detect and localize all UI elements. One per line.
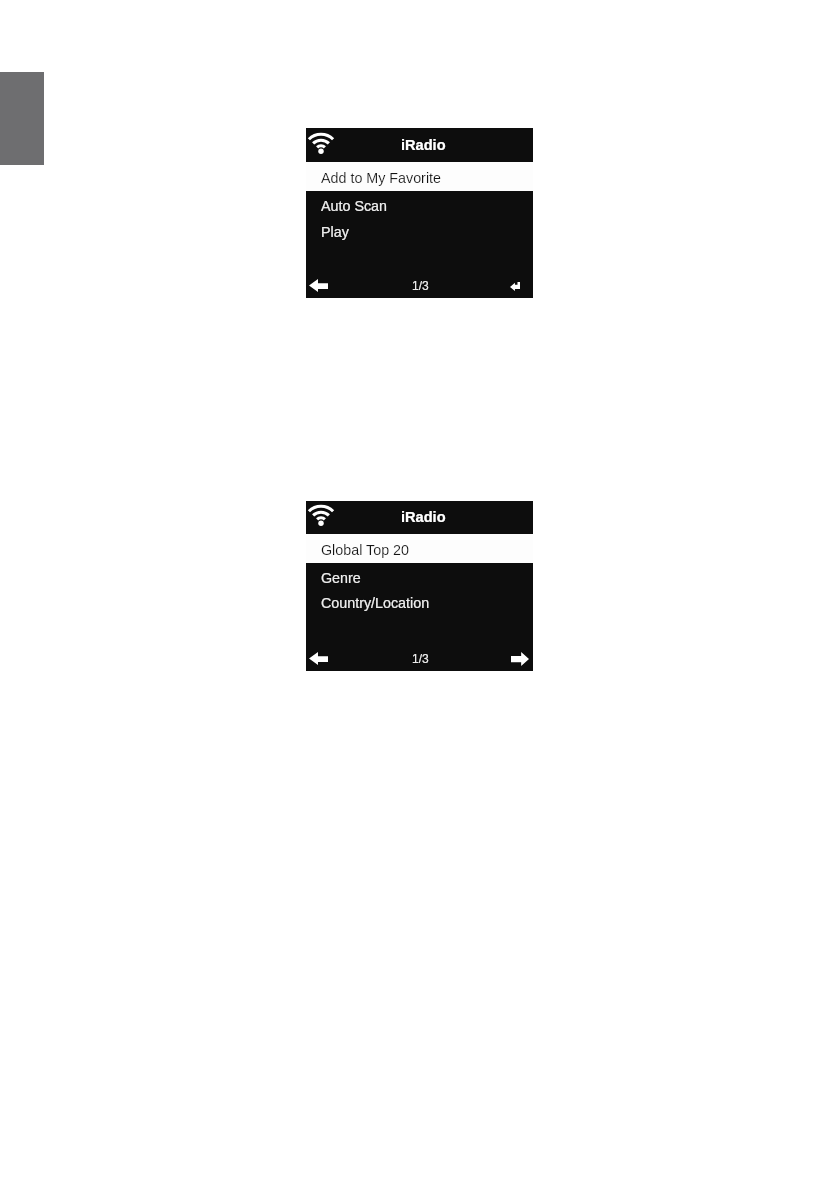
button[interactable]: Wi-Fi signal <box>309 132 333 153</box>
button[interactable]: Previous page <box>309 279 328 292</box>
staticText: Auto Scan <box>321 198 387 214</box>
button[interactable]: Auto Scan <box>306 191 533 218</box>
button[interactable]: Country/Location <box>306 588 533 613</box>
staticText: 1/3 <box>412 279 429 292</box>
button[interactable]: Previous page <box>309 652 328 665</box>
button[interactable]: Enter <box>510 282 520 291</box>
staticText: Global Top 20 <box>321 542 409 558</box>
staticText: 1/3 <box>412 652 429 665</box>
button[interactable]: Global Top 20 <box>306 534 533 563</box>
staticText: iRadio <box>401 509 446 525</box>
staticText: Genre <box>321 570 361 586</box>
button[interactable]: Play <box>306 217 533 244</box>
staticText: Play <box>321 224 349 240</box>
staticText: iRadio <box>401 137 446 153</box>
button[interactable]: Next page <box>511 652 529 666</box>
button[interactable]: Add to My Favorite <box>306 162 533 191</box>
button[interactable]: Wi-Fi signal <box>309 504 333 525</box>
staticText: Add to My Favorite <box>321 170 441 186</box>
staticText: Country/Location <box>321 595 430 611</box>
button[interactable]: Genre <box>306 563 533 588</box>
